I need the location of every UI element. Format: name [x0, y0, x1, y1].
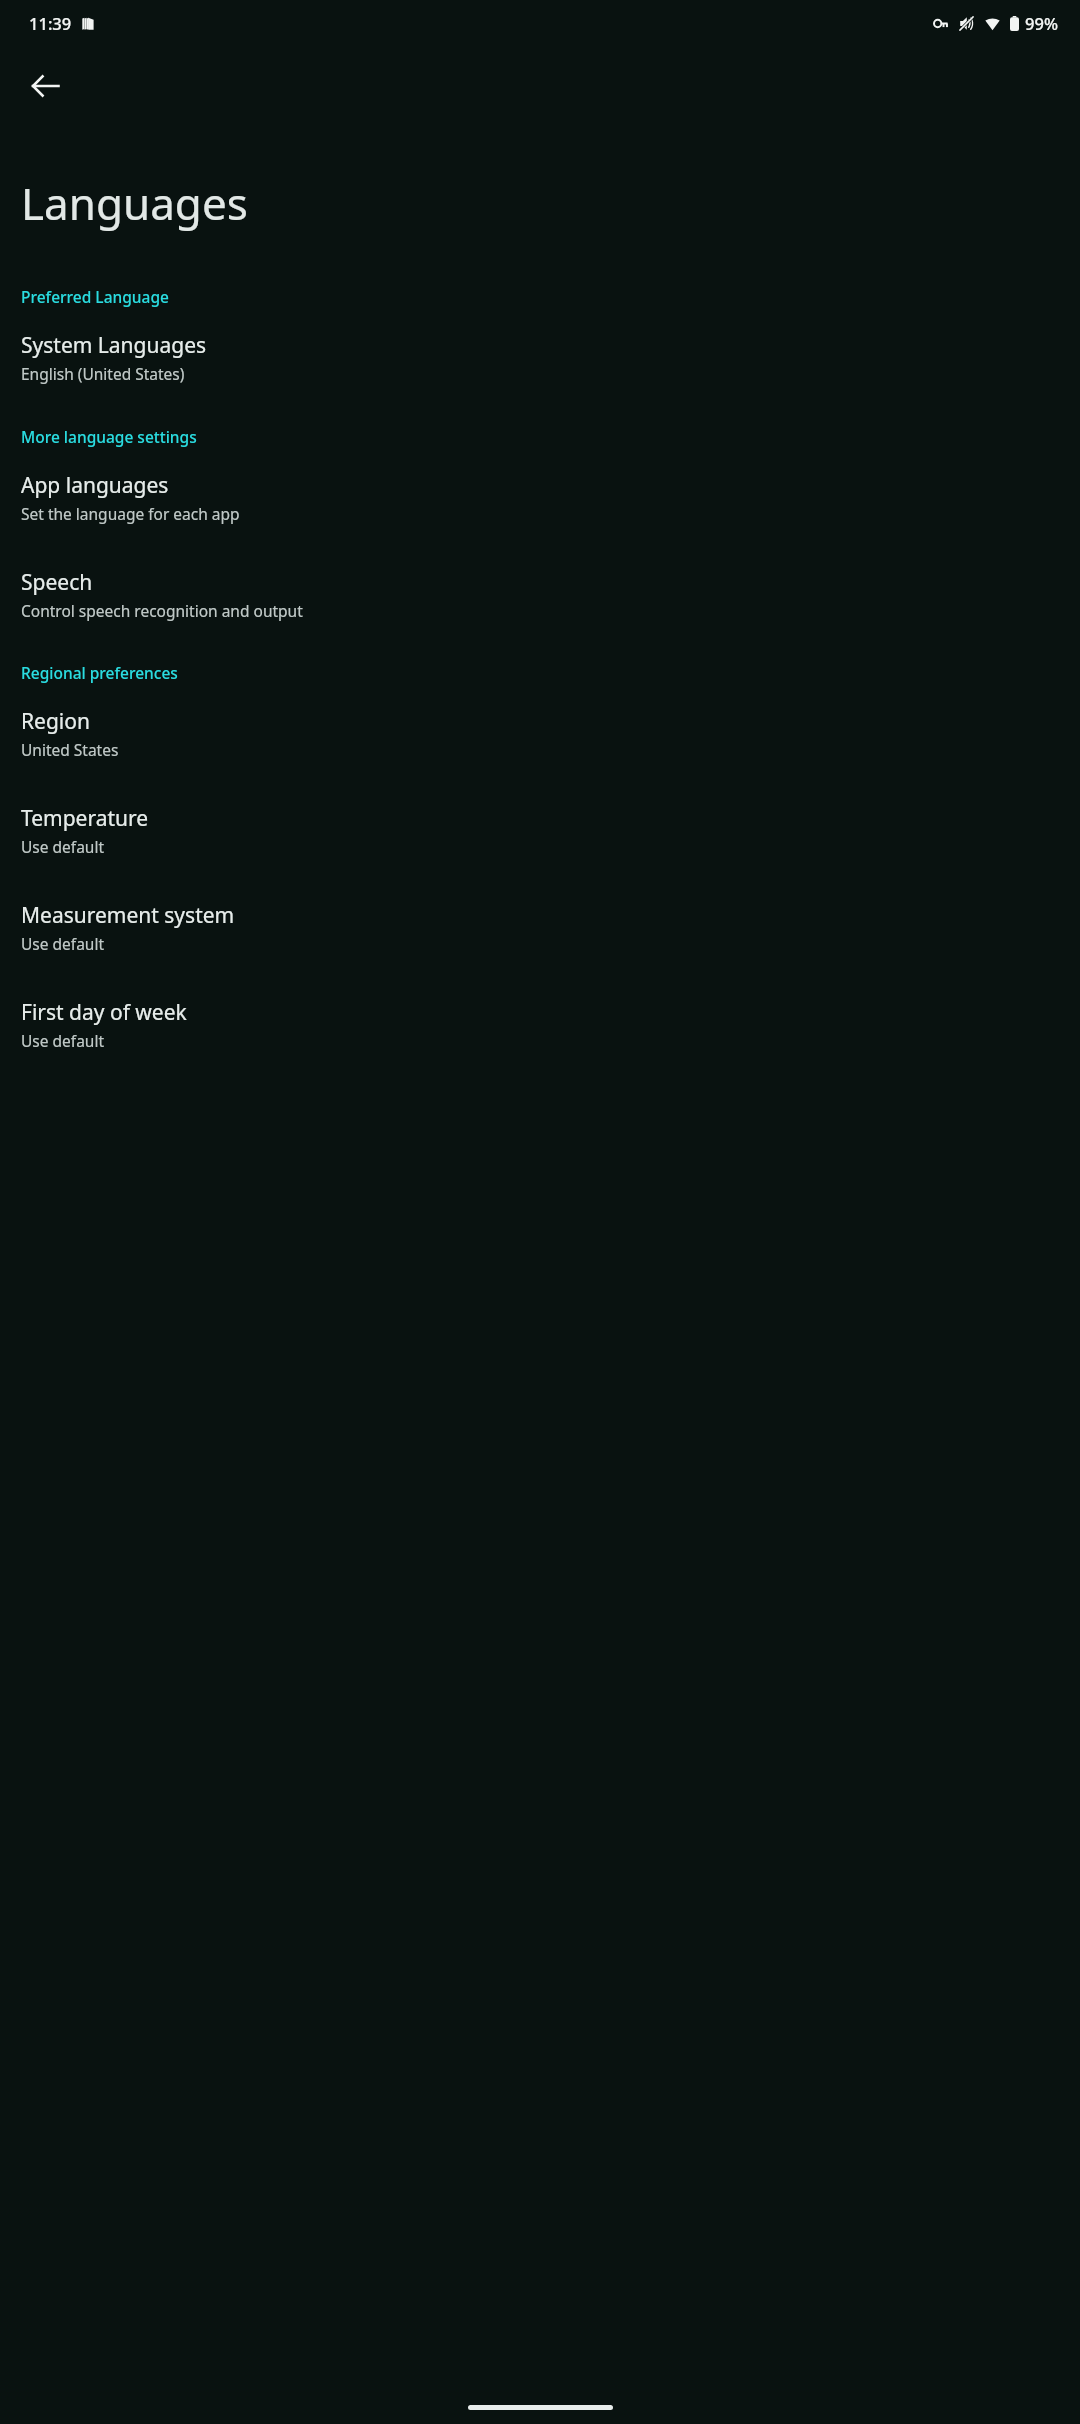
staticText: Temperature [21, 804, 149, 833]
staticText: App languages [21, 471, 169, 500]
button[interactable]: Speech [0, 546, 1080, 625]
staticText: 11:39 [29, 12, 72, 34]
staticText: Use default [21, 836, 105, 857]
staticText: Use default [21, 933, 105, 954]
button[interactable]: Temperature [0, 782, 1080, 861]
staticText: First day of week [21, 998, 187, 1027]
button[interactable]: Measurement system [0, 879, 1080, 958]
staticText: More language settings [21, 426, 197, 447]
staticText: Set the language for each app [21, 503, 240, 524]
button[interactable]: Back [14, 55, 76, 117]
staticText: Region [21, 707, 90, 736]
staticText: English (United States) [21, 363, 185, 384]
button[interactable]: First day of week [0, 976, 1080, 1055]
staticText: Measurement system [21, 901, 235, 930]
button[interactable]: Region [0, 685, 1080, 764]
staticText: Speech [21, 568, 93, 597]
staticText: 99% [1025, 12, 1058, 34]
staticText: Use default [21, 1030, 105, 1051]
staticText: System Languages [21, 331, 207, 360]
button[interactable]: System Languages [0, 309, 1080, 388]
staticText: Preferred Language [21, 286, 169, 307]
staticText: Regional preferences [21, 662, 178, 683]
staticText: Control speech recognition and output [21, 600, 303, 621]
staticText: United States [21, 739, 119, 760]
staticText: Languages [21, 173, 248, 233]
button[interactable]: App languages [0, 449, 1080, 528]
